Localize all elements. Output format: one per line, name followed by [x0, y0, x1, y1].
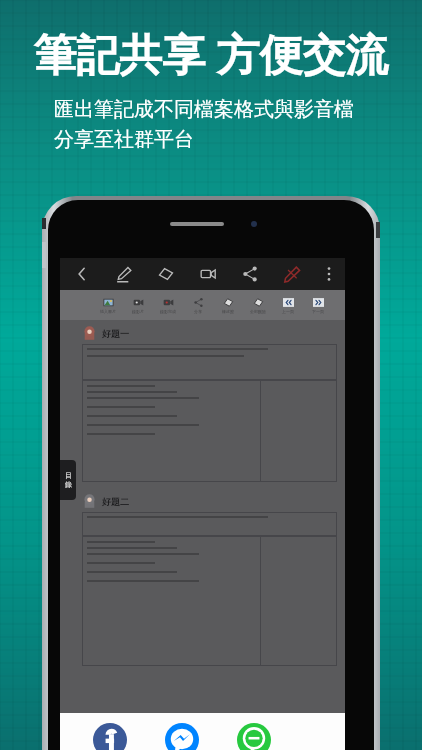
button[interactable]: 下一頁	[303, 290, 333, 320]
staticText: 下一頁	[312, 309, 324, 314]
staticText: 好題一	[102, 328, 129, 339]
button[interactable]: Facebook	[74, 723, 146, 750]
staticText: 錄影完成	[160, 309, 176, 314]
staticText: 上一頁	[282, 309, 294, 314]
button[interactable]: Line	[218, 723, 290, 750]
button[interactable]: More options	[313, 258, 345, 290]
staticText: 匯出筆記成不同檔案格式與影音檔	[54, 97, 412, 122]
button[interactable]: 插入圖片	[93, 290, 123, 320]
staticText: 好題二	[102, 496, 129, 507]
staticText: 分享	[194, 309, 202, 314]
button[interactable]: Record video	[187, 258, 229, 290]
staticText: 插入圖片	[100, 309, 116, 314]
staticText: 錄	[65, 480, 72, 489]
staticText: 分享至社群平台	[54, 127, 412, 152]
button[interactable]: Messenger	[146, 723, 218, 750]
button[interactable]: Share	[229, 258, 271, 290]
button[interactable]: Highlighter	[271, 258, 313, 290]
button[interactable]: 錄影片	[123, 290, 153, 320]
staticText: 筆記共享 方便交流	[12, 24, 410, 83]
button[interactable]: 上一頁	[273, 290, 303, 320]
button[interactable]: 橡皮擦	[213, 290, 243, 320]
button[interactable]: Pen	[103, 258, 145, 290]
button[interactable]: Eraser	[145, 258, 187, 290]
staticText: 錄影片	[132, 309, 144, 314]
staticText: 全部刪除	[250, 309, 266, 314]
staticText: 橡皮擦	[222, 309, 234, 314]
staticText: 目	[65, 471, 72, 480]
button[interactable]: 錄影完成	[153, 290, 183, 320]
button[interactable]: 分享	[183, 290, 213, 320]
button[interactable]: Back	[60, 258, 103, 290]
button[interactable]: 全部刪除	[243, 290, 273, 320]
button[interactable]: 目	[60, 460, 76, 500]
